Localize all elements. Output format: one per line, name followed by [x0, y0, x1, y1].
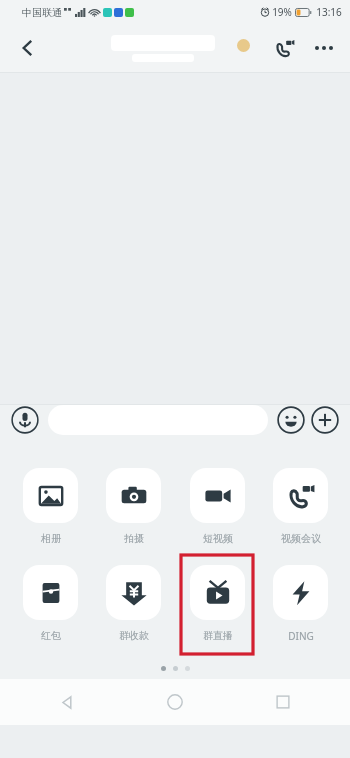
button[interactable]: Voice message: [10, 405, 40, 435]
button[interactable]: More options: [304, 28, 344, 68]
button[interactable]: 群收款: [106, 565, 161, 642]
button[interactable]: Back: [48, 683, 86, 721]
button[interactable]: 拍摄: [106, 468, 161, 545]
button[interactable]: 短视频: [190, 468, 245, 545]
button[interactable]: 群直播: [190, 565, 245, 642]
staticText: 短视频: [203, 532, 233, 545]
button[interactable]: 红包: [23, 565, 78, 642]
staticText: 群直播: [203, 629, 233, 642]
button[interactable]: 视频会议: [273, 468, 328, 545]
staticText: 视频会议: [281, 532, 321, 545]
button[interactable]: Back: [10, 30, 46, 66]
staticText: 红包: [41, 629, 61, 642]
staticText: 19%: [272, 5, 292, 19]
staticText: 相册: [41, 532, 61, 545]
staticText: 中国联通: [22, 6, 62, 19]
staticText: 13:16: [316, 5, 342, 19]
button[interactable]: Home: [156, 683, 194, 721]
staticText: 拍摄: [124, 532, 144, 545]
button[interactable]: Video call: [264, 28, 304, 68]
button[interactable]: Recent apps: [264, 683, 302, 721]
button[interactable]: Emoji: [276, 405, 306, 435]
staticText: DING: [288, 629, 314, 643]
button[interactable]: Add attachment: [310, 405, 340, 435]
staticText: 群收款: [119, 629, 149, 642]
button[interactable]: 相册: [23, 468, 78, 545]
button[interactable]: DING: [273, 565, 328, 643]
